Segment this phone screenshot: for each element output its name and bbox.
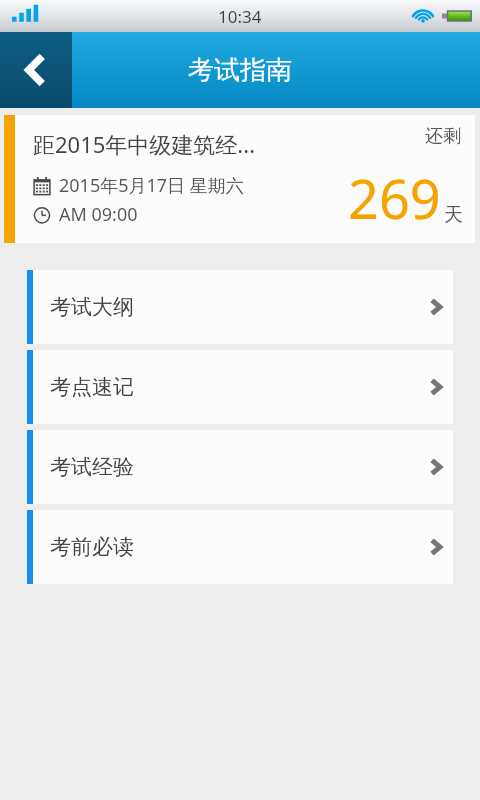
button[interactable]: 考点速记 <box>27 350 453 424</box>
staticText: 269 <box>348 161 441 235</box>
button[interactable]: 距2015年中级建筑经... <box>4 115 475 243</box>
staticText: 距2015年中级建筑经... <box>33 129 256 159</box>
staticText: AM 09:00 <box>59 202 138 227</box>
staticText: 天 <box>444 203 463 227</box>
staticText: 考点速记 <box>50 374 134 400</box>
button[interactable]: Back <box>0 32 72 108</box>
button[interactable]: 考试经验 <box>27 430 453 504</box>
staticText: 考前必读 <box>50 534 134 560</box>
staticText: 考试指南 <box>188 54 292 87</box>
staticText: 10:34 <box>218 5 262 28</box>
staticText: 还剩 <box>425 125 461 148</box>
staticText: 考试大纲 <box>50 294 134 320</box>
staticText: 考试经验 <box>50 454 134 480</box>
staticText: 2015年5月17日 星期六 <box>59 173 244 198</box>
button[interactable]: 考前必读 <box>27 510 453 584</box>
button[interactable]: 考试大纲 <box>27 270 453 344</box>
